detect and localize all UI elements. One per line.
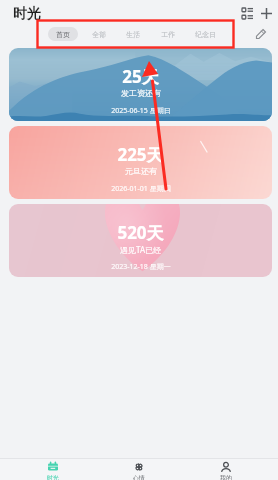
staticText: 2023-12-18 星期一 [111, 262, 171, 272]
button[interactable]: 520天 [9, 204, 272, 277]
staticText: 首页 [56, 30, 70, 39]
button[interactable]: 生活 [126, 27, 140, 41]
staticText: 225天 [117, 143, 164, 166]
button[interactable]: 全部 [92, 27, 106, 41]
staticText: 心情 [133, 474, 145, 480]
button[interactable]: 首页 [48, 27, 78, 41]
staticText: 2026-01-01 星期四 [111, 184, 171, 194]
button[interactable]: 25天 [9, 48, 272, 121]
staticText: 25天 [122, 65, 159, 88]
staticText: 时光 [13, 5, 41, 23]
staticText: 时光 [47, 474, 59, 480]
button[interactable]: 时光 [32, 459, 74, 480]
button[interactable]: 我的 [205, 459, 247, 480]
staticText: 元旦还有 [125, 166, 157, 176]
button[interactable]: 225天 [9, 126, 272, 199]
staticText: 纪念日 [195, 30, 216, 39]
staticText: 生活 [126, 30, 140, 39]
button[interactable]: Edit [253, 26, 269, 42]
button[interactable]: 心情 [118, 459, 160, 480]
button[interactable]: 纪念日 [195, 27, 216, 41]
staticText: 520天 [117, 221, 164, 244]
staticText: 发工资还有 [121, 88, 161, 98]
staticText: 2025-06-15 星期日 [111, 106, 171, 116]
button[interactable]: Add [257, 4, 275, 22]
staticText: 我的 [220, 474, 232, 480]
staticText: 工作 [161, 30, 175, 39]
staticText: 遇见TA已经 [120, 244, 161, 255]
staticText: 全部 [92, 30, 106, 39]
button[interactable]: 工作 [161, 27, 175, 41]
button[interactable]: List view [238, 4, 256, 22]
